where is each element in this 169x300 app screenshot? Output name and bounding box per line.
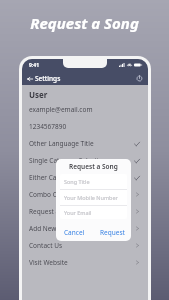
staticText: Add New Song <box>29 224 135 233</box>
staticText: Song Title <box>64 178 90 185</box>
button[interactable]: Request a Song <box>22 203 148 220</box>
staticText: User <box>29 89 48 100</box>
staticText: Request a Song <box>29 207 135 216</box>
button[interactable]: Single Category Selection <box>22 152 148 169</box>
staticText: Visit Website <box>29 258 135 267</box>
staticText: Request <box>100 228 125 237</box>
staticText: example@email.com <box>29 105 93 114</box>
button[interactable]: Add New Song <box>22 220 148 237</box>
button[interactable]: Either Category or Language <box>22 169 148 186</box>
button[interactable]: Combo Offers <box>22 186 148 203</box>
button[interactable]: example@email.com <box>22 101 148 118</box>
staticText: Cancel <box>64 228 85 237</box>
button[interactable]: Visit Website <box>22 254 148 271</box>
staticText: Other Language Title <box>29 139 134 148</box>
staticText: Your Email <box>64 209 92 216</box>
staticText: Request a Song <box>30 13 139 33</box>
staticText: Settings <box>35 74 61 83</box>
button[interactable]: Request <box>93 223 131 241</box>
staticText: Either Category or Language <box>29 173 134 182</box>
button[interactable]: Cancel <box>56 223 93 241</box>
staticText: Request a Song <box>69 162 118 171</box>
staticText: 1234567890 <box>29 122 67 131</box>
button[interactable]: Power <box>136 75 148 82</box>
staticText: 9:41 <box>29 62 39 69</box>
button[interactable]: Other Language Title <box>22 135 148 152</box>
staticText: Single Category Selection <box>29 156 134 165</box>
button[interactable]: 1234567890 <box>22 118 148 135</box>
staticText: Combo Offers <box>29 190 135 199</box>
staticText: Your Mobile Number <box>64 194 118 201</box>
staticText: Contact Us <box>29 241 135 250</box>
button[interactable]: Contact Us <box>22 237 148 254</box>
button[interactable]: Settings <box>22 74 65 83</box>
